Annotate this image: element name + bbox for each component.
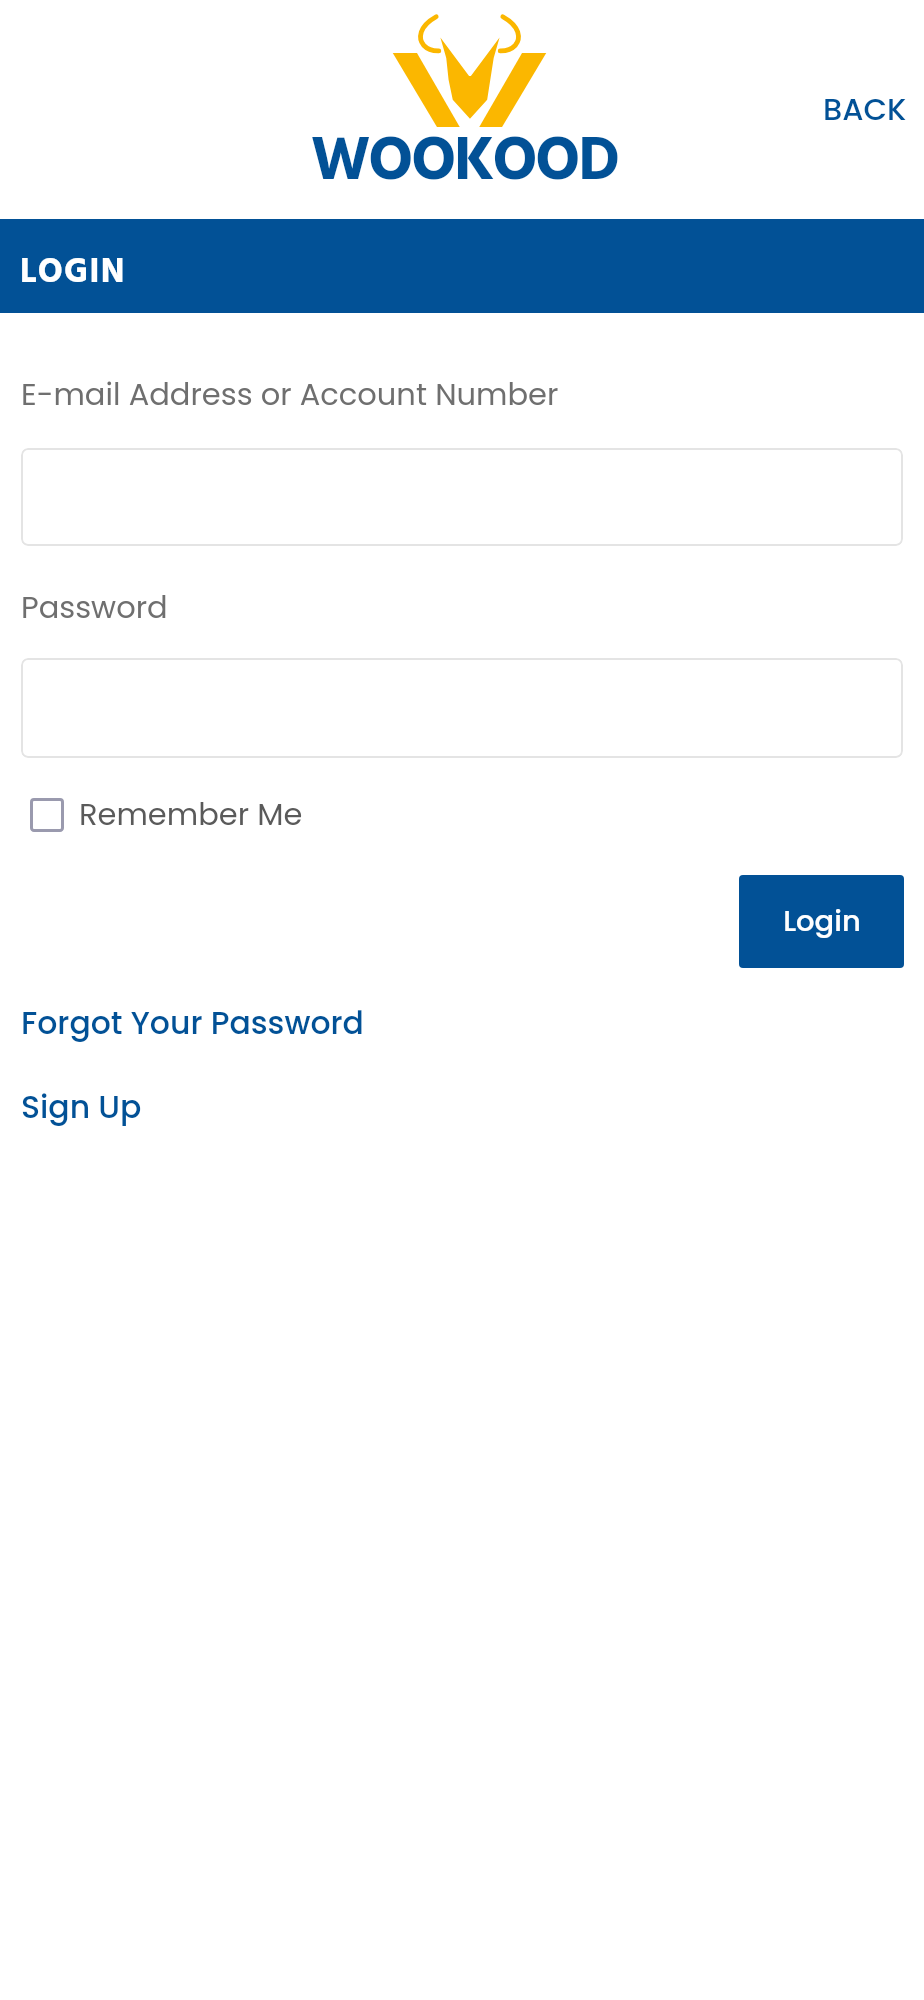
staticText: Remember Me [79, 793, 303, 836]
staticText: Forgot Your Password [21, 1001, 364, 1045]
button[interactable]: Text input field [21, 658, 903, 758]
button[interactable]: Remember Me [21, 789, 303, 840]
staticText: Login [783, 901, 861, 942]
button[interactable]: Forgot Your Password [21, 997, 364, 1049]
staticText: BACK [823, 88, 907, 131]
staticText: WOOKOOD [311, 115, 618, 213]
staticText: Password [21, 586, 168, 629]
staticText: E-mail Address or Account Number [21, 373, 559, 416]
staticText: LOGIN [20, 246, 126, 300]
button[interactable]: Text input field [21, 448, 903, 546]
button[interactable]: Sign Up [21, 1081, 142, 1133]
staticText: Sign Up [21, 1085, 142, 1129]
button[interactable]: Login [739, 875, 904, 968]
other: Wookood logo [392, 16, 547, 127]
button[interactable]: BACK [803, 76, 924, 143]
